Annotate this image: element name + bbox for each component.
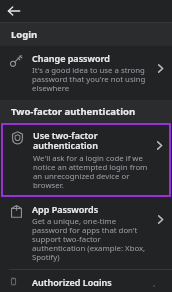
button[interactable]: Authorized Logins	[0, 270, 172, 292]
other: Open Use two-factor authentication	[153, 139, 166, 152]
staticText: Two-factor authentication	[11, 105, 136, 118]
staticText: Change password	[32, 52, 110, 64]
staticText: It's a good idea to use a strong passwor…	[32, 65, 150, 94]
other: Open Change password	[154, 62, 167, 75]
staticText: Login	[11, 28, 38, 41]
staticText: Get a unique, one-time password for apps…	[32, 216, 150, 263]
staticText: Use two-factor authentication	[33, 129, 149, 152]
button[interactable]: Use two-factor authentication	[1, 123, 171, 197]
button[interactable]: Back	[6, 3, 22, 19]
staticText: App Passwords	[32, 203, 99, 215]
other: Open App Passwords	[154, 213, 167, 226]
button[interactable]: Change password	[0, 46, 172, 100]
staticText: Authorized Logins	[32, 276, 112, 286]
staticText: We'll ask for a login code if we notice …	[33, 153, 149, 191]
button[interactable]: App Passwords	[0, 197, 172, 269]
